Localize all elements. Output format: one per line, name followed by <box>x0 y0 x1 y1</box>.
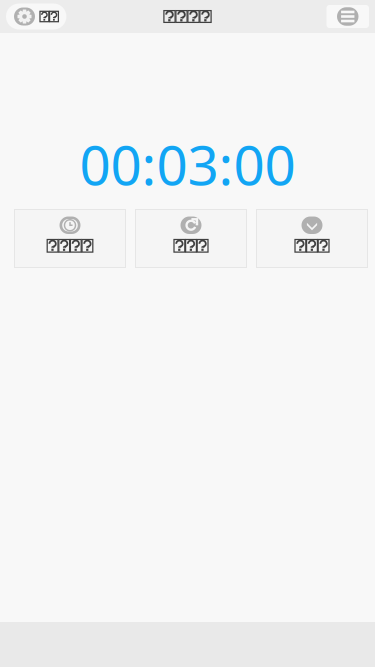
button[interactable] <box>135 209 246 267</box>
staticText: 00:03:00 <box>79 128 295 200</box>
button[interactable] <box>14 209 125 267</box>
button[interactable] <box>6 3 66 29</box>
button[interactable]: Menu <box>326 5 369 28</box>
button[interactable] <box>256 209 367 267</box>
